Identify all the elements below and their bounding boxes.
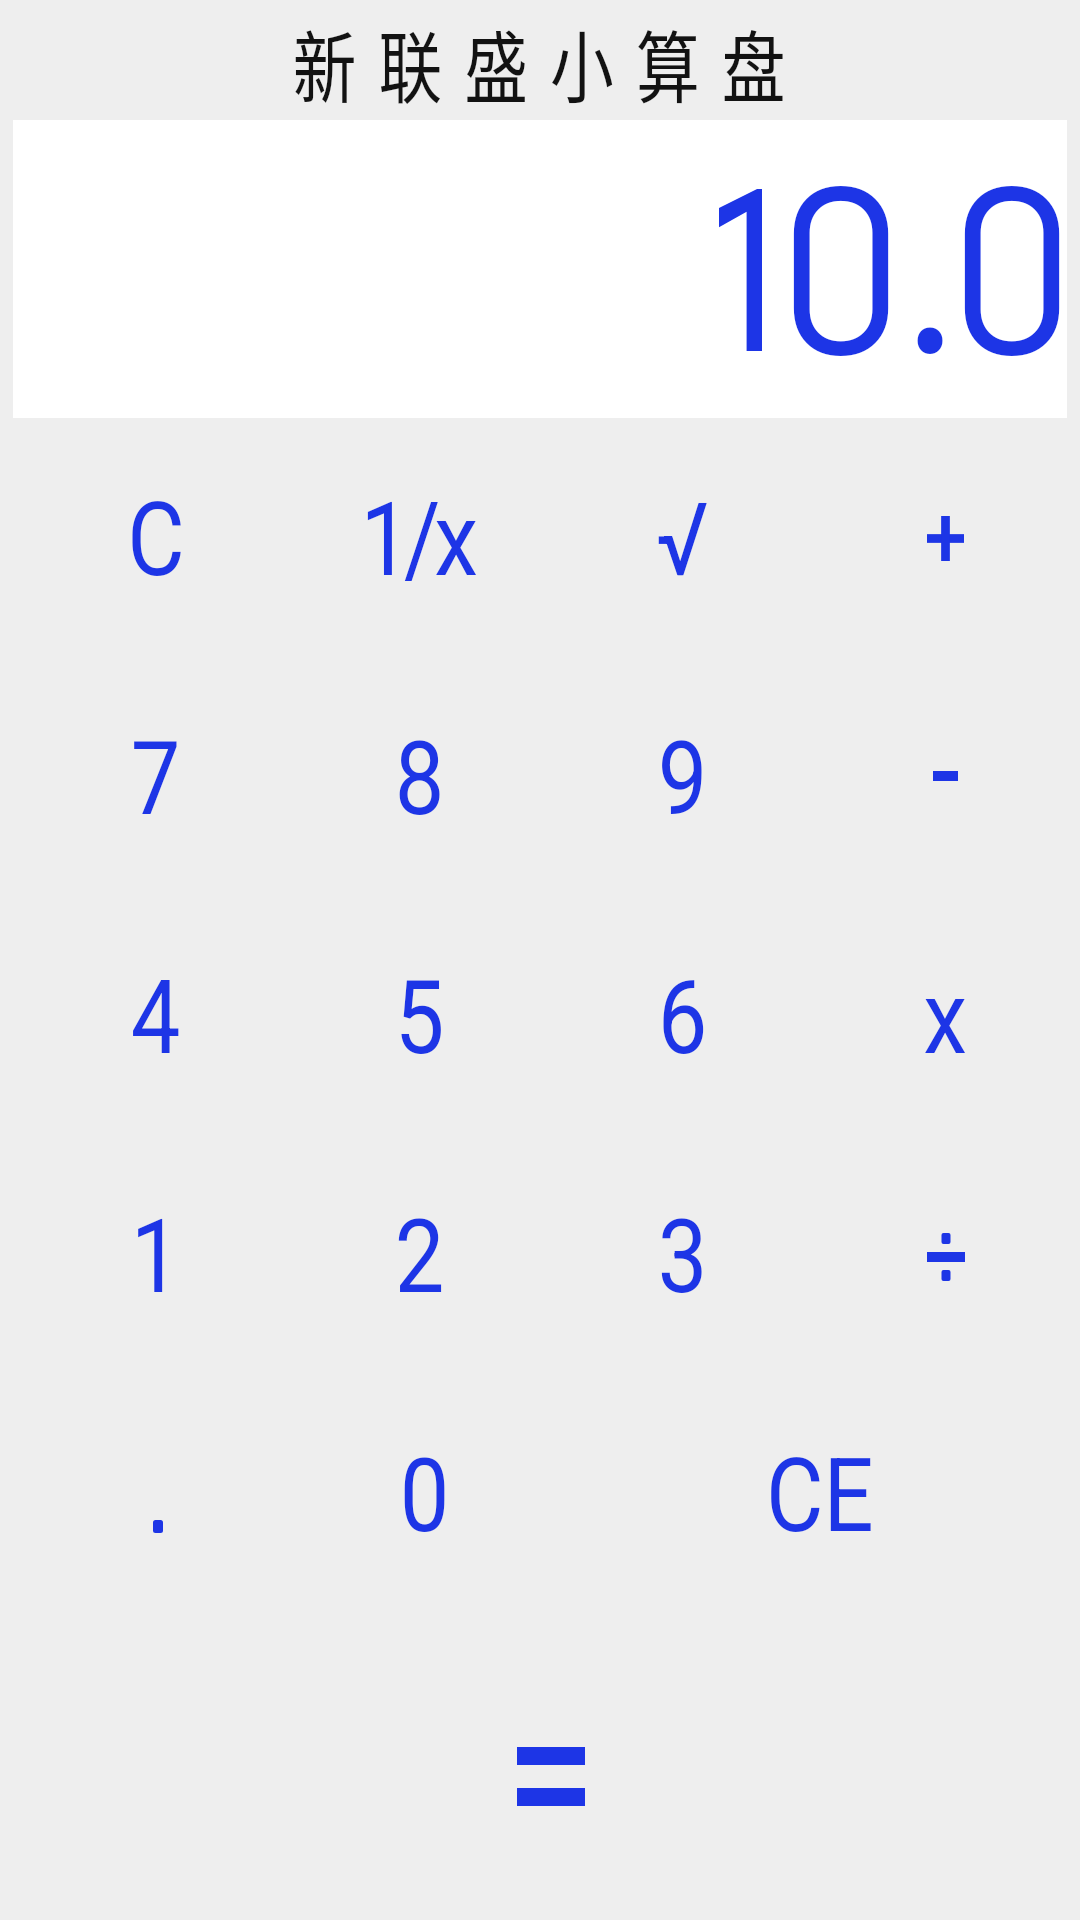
button[interactable]: Plus [814,421,1077,660]
staticText: 1 [131,1198,181,1317]
button[interactable]: 9 [551,660,814,899]
button[interactable]: Minus [814,660,1077,899]
staticText: 8 [395,720,445,839]
button[interactable]: 1 [24,1138,288,1377]
button[interactable]: 1/x [288,421,551,660]
button[interactable]: Decimal point [30,1377,293,1616]
staticText: CE [766,1437,874,1556]
staticText: 6 [658,959,708,1078]
button[interactable]: 0 [293,1377,556,1616]
staticText: 5 [395,959,445,1078]
staticText: C [127,481,186,600]
button[interactable]: 6 [551,899,814,1138]
button[interactable]: 8 [288,660,551,899]
staticText: 0.0 [778,118,1071,401]
button[interactable]: √ [551,421,814,660]
staticText: 1/x [360,481,473,600]
button[interactable]: Equals [517,1747,585,1806]
button[interactable]: 3 [551,1138,814,1377]
staticText: 7 [131,720,181,839]
staticText: 9 [658,720,708,839]
staticText: x [923,959,968,1078]
button[interactable]: CE [556,1377,1080,1616]
staticText: 新联盛小算盘 [293,7,808,120]
staticText: 0 [400,1437,450,1556]
button[interactable]: 5 [288,899,551,1138]
button[interactable]: x [814,899,1077,1138]
staticText: 2 [395,1198,445,1317]
staticText: √ [656,481,709,600]
button[interactable]: 2 [288,1138,551,1377]
button[interactable]: C [24,421,288,660]
button[interactable]: 4 [24,899,288,1138]
staticText: 4 [131,959,181,1078]
button[interactable]: 7 [24,660,288,899]
staticText: 3 [658,1198,708,1317]
button[interactable]: Divide [814,1138,1077,1377]
